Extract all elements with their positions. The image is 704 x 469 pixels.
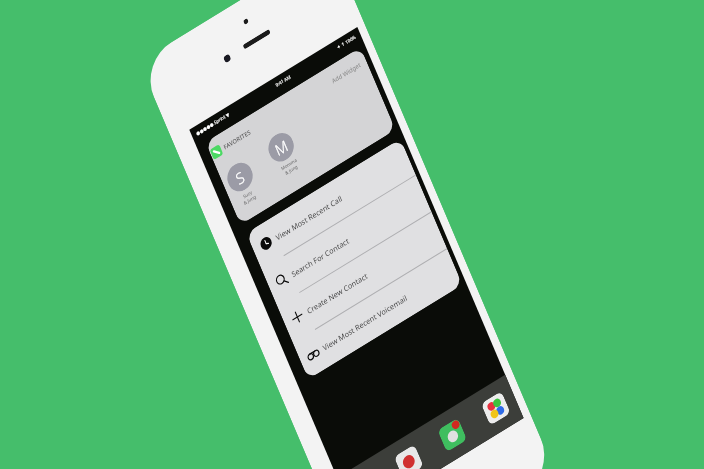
button[interactable]: S [214,152,272,215]
staticText: M [267,132,296,163]
staticText: View Most Recent Voicemail [319,273,411,372]
button[interactable]: Add Widget [329,54,364,92]
staticText: Create New Contact [303,256,371,330]
staticText: S [228,164,252,191]
button[interactable]: Phone [345,466,386,469]
button[interactable]: Create New Contact [268,176,456,379]
button[interactable]: View Most Recent Voicemail [284,213,472,415]
button[interactable]: Phone app [432,413,473,457]
staticText: Search For Contact [287,222,353,293]
staticText: Momma & Jung [277,153,303,181]
button[interactable]: Music [388,440,429,469]
button[interactable]: Search For Contact [253,139,440,342]
button[interactable]: M [255,122,313,185]
staticText: View Most Recent Call [272,178,346,258]
staticText: FAVORITES [220,121,255,158]
staticText: Suzy & Jung [237,184,260,209]
staticText: ✦ ↑ 100% [334,29,358,55]
button[interactable]: View Most Recent Call [237,102,425,305]
staticText: ●●●●● Sprint ▼ [194,103,232,144]
button[interactable]: Photos [475,386,516,430]
staticText: 9:41 AM [273,69,294,91]
